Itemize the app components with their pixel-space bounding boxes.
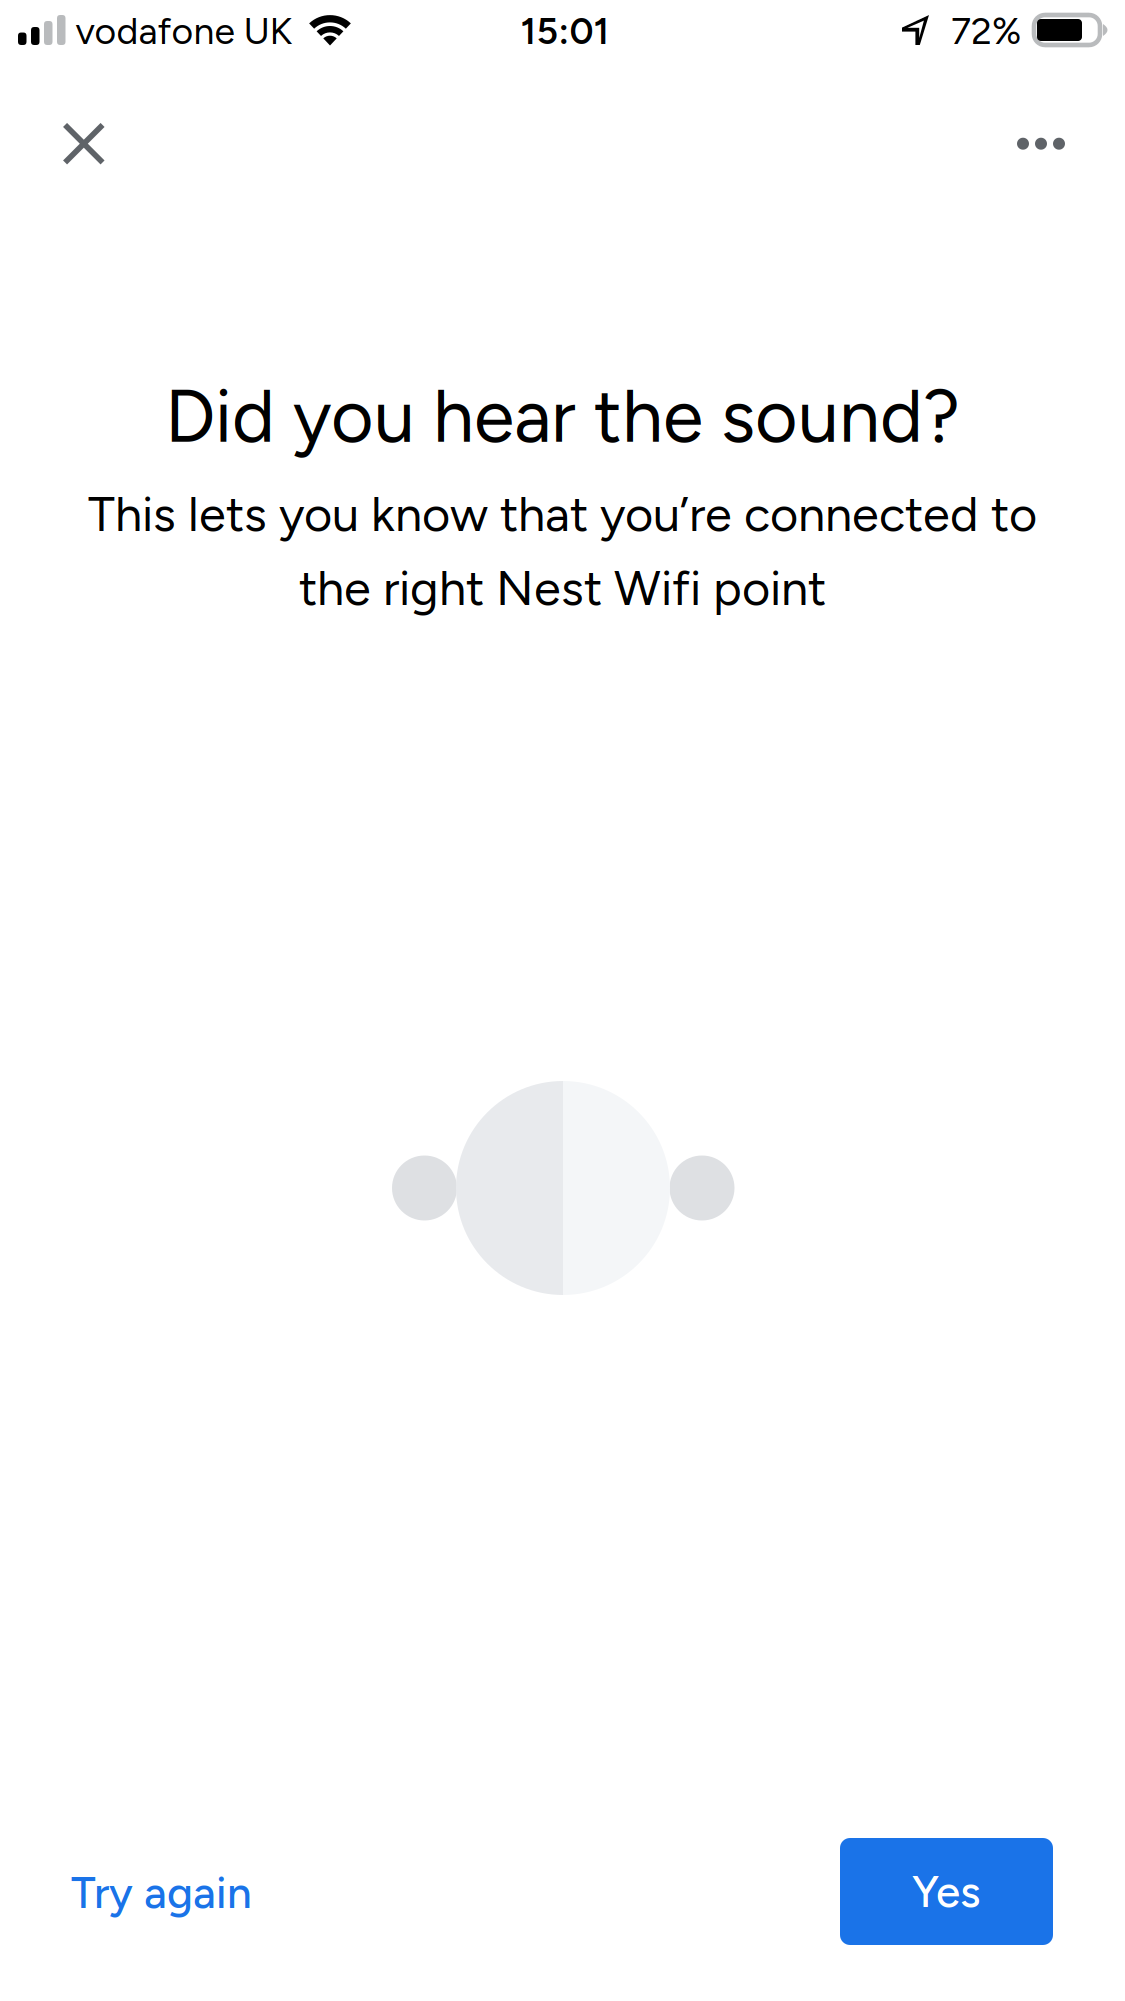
button[interactable]: Yes bbox=[840, 1838, 1053, 1945]
staticText: Yes bbox=[912, 1865, 981, 1918]
button[interactable]: Close bbox=[36, 96, 132, 192]
button[interactable]: More options bbox=[993, 96, 1089, 192]
button[interactable]: Try again bbox=[46, 1844, 276, 1940]
staticText: Try again bbox=[71, 1866, 252, 1919]
staticText: 72% bbox=[951, 9, 1021, 53]
staticText: vodafone UK bbox=[75, 9, 292, 53]
staticText: Did you hear the sound? bbox=[165, 372, 960, 460]
staticText: the right Nest Wifi point bbox=[299, 559, 826, 617]
staticText: This lets you know that you’re connected… bbox=[88, 485, 1037, 543]
staticText: 15:01 bbox=[520, 9, 609, 53]
